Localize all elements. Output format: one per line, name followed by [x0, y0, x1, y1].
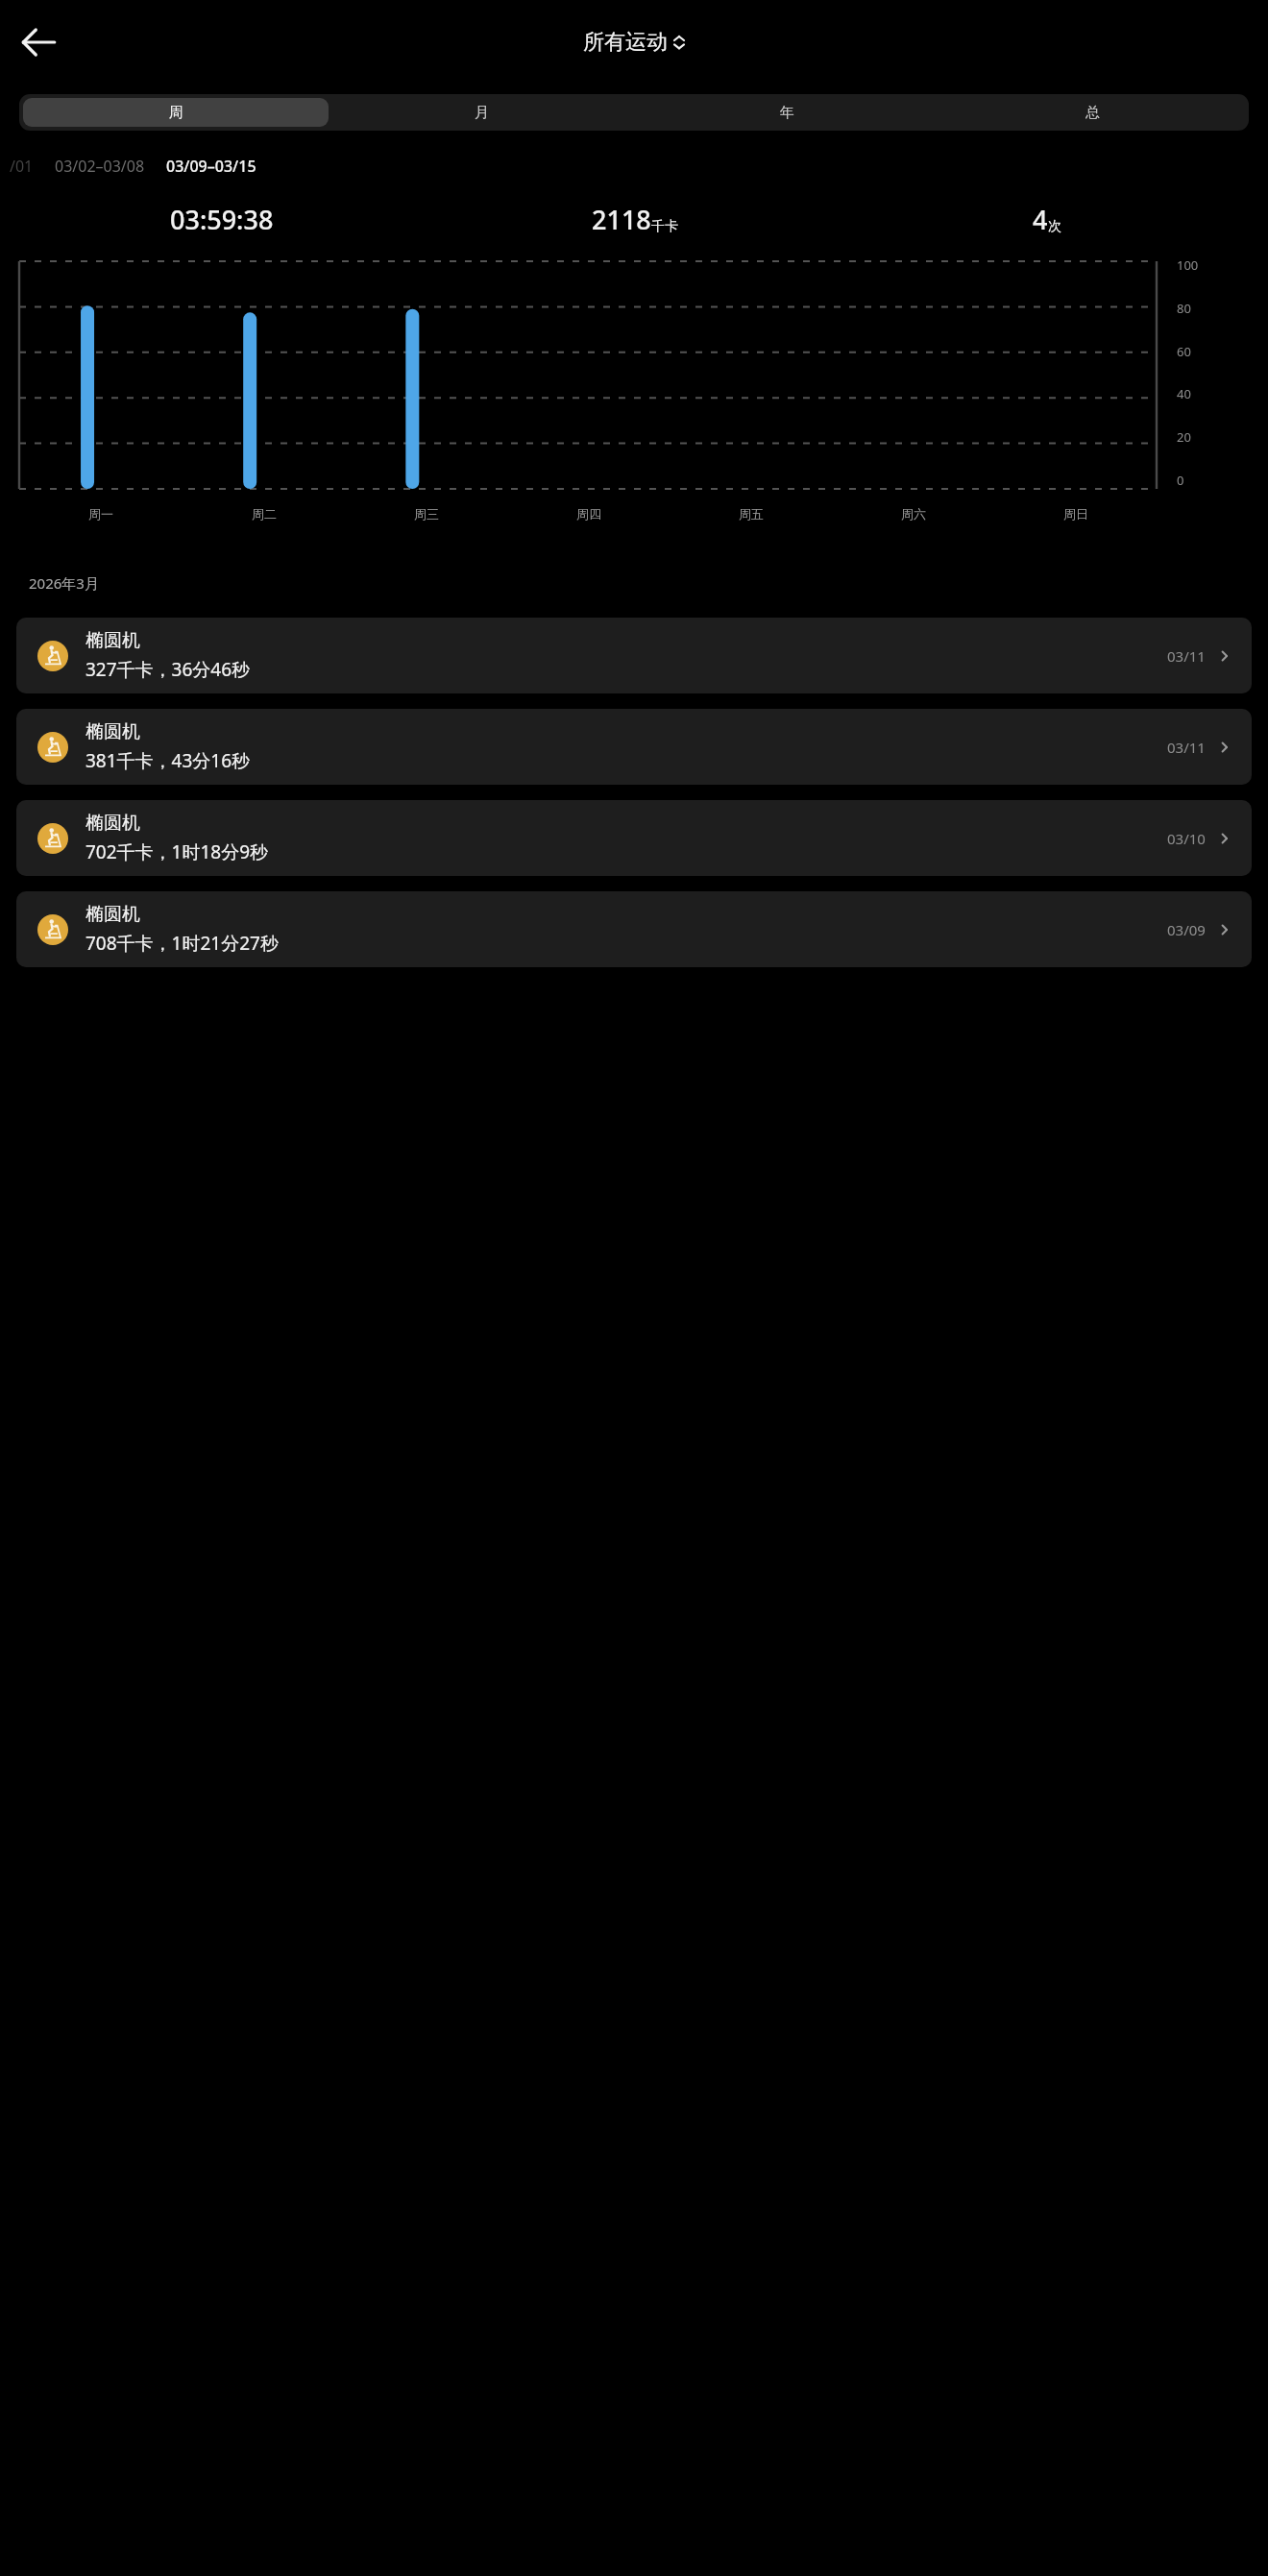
staticText: 20 — [1177, 428, 1191, 446]
button[interactable]: 月 — [329, 98, 634, 127]
staticText: 月 — [475, 104, 489, 122]
staticText: 周二 — [252, 506, 277, 522]
staticText: 0 — [1177, 472, 1184, 489]
staticText: /01 — [10, 156, 34, 177]
staticText: 40 — [1177, 385, 1191, 402]
staticText: 椭圆机 — [85, 629, 140, 652]
button[interactable]: 所有运动 — [583, 29, 686, 56]
button[interactable]: 年 — [634, 98, 939, 127]
staticText: 周五 — [739, 506, 764, 522]
staticText: 椭圆机 — [85, 903, 140, 926]
staticText: 327千卡，36分46秒 — [85, 657, 251, 682]
button[interactable]: Back — [12, 15, 65, 69]
staticText: 周六 — [901, 506, 926, 522]
button[interactable]: 椭圆机 — [16, 709, 1252, 785]
staticText: 周 — [169, 104, 183, 122]
staticText: 03:59:38 — [170, 202, 274, 237]
staticText: 60 — [1177, 343, 1191, 360]
button[interactable]: 周 — [23, 98, 329, 127]
staticText: 2026年3月 — [29, 573, 99, 593]
staticText: 381千卡，43分16秒 — [85, 748, 251, 773]
staticText: 周一 — [88, 506, 113, 522]
staticText: 80 — [1177, 300, 1191, 317]
staticText: 03/10 — [1167, 829, 1206, 848]
staticText: 年 — [780, 104, 794, 122]
button[interactable]: 03/09–03/15 — [166, 156, 256, 177]
staticText: 03/09 — [1167, 920, 1206, 939]
staticText: 周三 — [414, 506, 439, 522]
staticText: 2118 — [592, 202, 651, 237]
staticText: 03/11 — [1167, 738, 1206, 757]
staticText: 03/09–03/15 — [166, 156, 256, 177]
button[interactable]: 03/02–03/08 — [55, 156, 145, 177]
staticText: 椭圆机 — [85, 720, 140, 743]
button[interactable]: 椭圆机 — [16, 891, 1252, 967]
staticText: 千卡 — [651, 218, 678, 235]
staticText: 100 — [1177, 256, 1199, 274]
button[interactable]: 椭圆机 — [16, 618, 1252, 693]
staticText: 708千卡，1时21分27秒 — [85, 931, 279, 956]
staticText: 总 — [1085, 104, 1100, 122]
staticText: 次 — [1048, 218, 1061, 235]
staticText: 702千卡，1时18分9秒 — [85, 839, 269, 864]
staticText: 周日 — [1063, 506, 1088, 522]
staticText: 周四 — [576, 506, 601, 522]
button[interactable]: 总 — [939, 98, 1245, 127]
staticText: 椭圆机 — [85, 812, 140, 835]
staticText: 所有运动 — [583, 29, 668, 56]
staticText: 4 — [1033, 202, 1048, 237]
staticText: 03/02–03/08 — [55, 156, 145, 177]
staticText: 03/11 — [1167, 646, 1206, 666]
button[interactable]: 椭圆机 — [16, 800, 1252, 876]
